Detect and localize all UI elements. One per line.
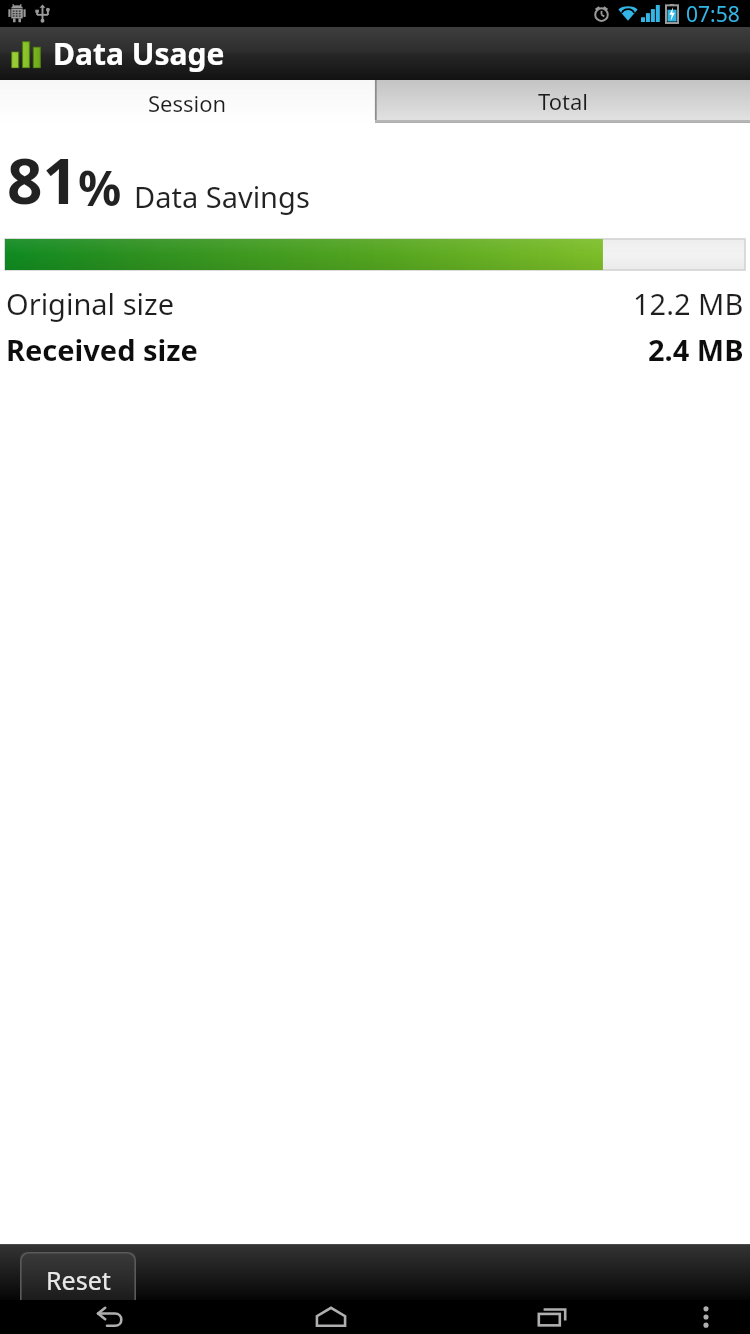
- button[interactable]: More options: [662, 1300, 750, 1334]
- staticText: Session: [148, 88, 227, 118]
- button[interactable]: Home: [220, 1300, 441, 1334]
- button[interactable]: Reset: [20, 1252, 136, 1308]
- staticText: 81: [7, 138, 78, 222]
- button[interactable]: Recent apps: [441, 1300, 662, 1334]
- staticText: %: [78, 155, 122, 220]
- staticText: Original size: [6, 284, 174, 323]
- button[interactable]: Total: [375, 80, 750, 126]
- button[interactable]: Session: [0, 80, 375, 126]
- staticText: Data Savings: [134, 177, 310, 216]
- staticText: Data Usage: [53, 33, 225, 74]
- staticText: 07:58: [686, 0, 740, 27]
- staticText: 12.2 MB: [633, 284, 744, 323]
- staticText: Reset: [46, 1263, 111, 1297]
- staticText: 2.4 MB: [648, 330, 744, 369]
- button[interactable]: Back: [0, 1300, 220, 1334]
- staticText: Total: [538, 86, 588, 116]
- staticText: Received size: [6, 330, 198, 369]
